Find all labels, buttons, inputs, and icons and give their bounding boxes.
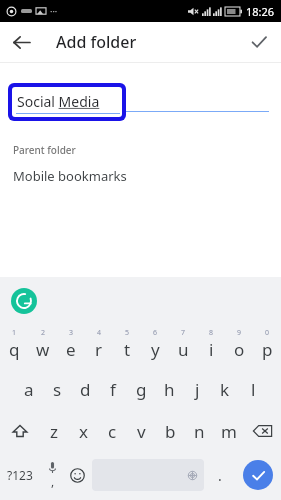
staticText: ··· (50, 5, 58, 17)
staticText: 9 (237, 328, 242, 338)
staticText: 18:26 (246, 4, 275, 19)
button[interactable]: ?123 (0, 452, 40, 498)
staticText: b (165, 420, 176, 443)
staticText: Mobile bookmarks (13, 167, 127, 185)
button[interactable]: . (206, 452, 234, 498)
staticText: Add folder (56, 31, 137, 53)
staticText: 0 (265, 328, 270, 338)
button[interactable]: f (99, 368, 127, 410)
button[interactable]: Backspace (243, 410, 281, 452)
button[interactable]: s (43, 368, 71, 410)
button[interactable]: d (71, 368, 99, 410)
staticText: n (194, 420, 205, 443)
button[interactable]: Enter (234, 452, 281, 498)
staticText: i (209, 338, 214, 361)
staticText: s (53, 378, 62, 401)
staticText: e (66, 338, 76, 361)
staticText: 3 (69, 328, 74, 338)
button[interactable]: 5 (113, 325, 141, 368)
button[interactable]: 7 (169, 325, 197, 368)
staticText: w (36, 338, 50, 361)
staticText: Social Media (17, 92, 100, 111)
staticText: 2 (41, 328, 46, 338)
button[interactable]: Space (92, 459, 204, 491)
staticText: 6 (153, 328, 158, 338)
staticText: a (24, 378, 34, 401)
button[interactable]: k (211, 368, 239, 410)
staticText: v (137, 420, 146, 443)
staticText: c (108, 420, 117, 443)
button[interactable]: j (183, 368, 211, 410)
staticText: p (262, 338, 273, 361)
staticText: d (80, 378, 91, 401)
staticText: y (151, 338, 160, 361)
button[interactable]: 4 (85, 325, 113, 368)
staticText: h (164, 378, 175, 401)
staticText: z (50, 420, 58, 443)
staticText: 5 (125, 328, 130, 338)
button[interactable]: Voice input (40, 452, 65, 498)
button[interactable]: Emoji (65, 452, 90, 498)
button[interactable]: Back (6, 27, 36, 57)
staticText: f (110, 378, 116, 401)
button[interactable]: b (156, 410, 185, 452)
button[interactable]: 6 (141, 325, 169, 368)
staticText: 4 (97, 328, 102, 338)
button[interactable]: Shift (0, 410, 39, 452)
staticText: o (234, 338, 245, 361)
button[interactable]: 1 (0, 325, 29, 368)
staticText: r (95, 338, 103, 361)
button[interactable]: n (185, 410, 214, 452)
button[interactable]: 8 (197, 325, 225, 368)
button[interactable]: 3 (57, 325, 85, 368)
button[interactable]: c (98, 410, 127, 452)
button[interactable]: h (155, 368, 183, 410)
staticText: q (9, 338, 20, 361)
staticText: , (51, 473, 55, 489)
staticText: j (195, 378, 200, 401)
button[interactable]: m (214, 410, 243, 452)
button[interactable]: z (39, 410, 69, 452)
staticText: u (178, 338, 189, 361)
button[interactable]: Social Media (12, 87, 122, 117)
button[interactable]: 2 (29, 325, 57, 368)
staticText: k (220, 378, 230, 401)
button[interactable]: a (15, 368, 43, 410)
staticText: . (218, 466, 222, 485)
staticText: t (124, 338, 131, 361)
staticText: g (136, 378, 147, 401)
button[interactable]: v (127, 410, 156, 452)
staticText: ?123 (7, 467, 33, 483)
button[interactable]: l (239, 368, 267, 410)
staticText: 7 (181, 328, 186, 338)
staticText: x (79, 420, 88, 443)
button[interactable]: Save (243, 26, 275, 58)
button[interactable]: 9 (225, 325, 253, 368)
button[interactable]: Grammarly (11, 288, 37, 314)
staticText: l (251, 378, 256, 401)
staticText: Parent folder (13, 143, 76, 157)
button[interactable]: g (127, 368, 155, 410)
button[interactable]: 0 (253, 325, 281, 368)
button[interactable]: x (69, 410, 98, 452)
staticText: 8 (209, 328, 214, 338)
staticText: 1 (12, 328, 17, 338)
staticText: m (221, 420, 237, 443)
